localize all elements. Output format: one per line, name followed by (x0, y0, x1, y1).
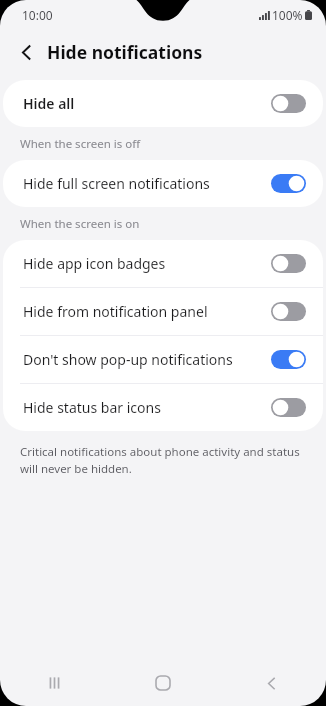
button[interactable]: Hide status bar icons (3, 384, 323, 431)
button[interactable]: Off (271, 254, 306, 273)
button[interactable]: Hide all (3, 80, 323, 127)
button[interactable]: Off (271, 398, 306, 417)
button[interactable]: On (271, 174, 306, 193)
button[interactable]: Hide app icon badges (3, 240, 323, 287)
button[interactable]: Recents (0, 660, 108, 706)
button[interactable]: Off (271, 302, 306, 321)
staticText: Critical notifications about phone activ… (20, 444, 300, 477)
staticText: Don't show pop-up notifications (23, 350, 233, 369)
staticText: When the screen is on (20, 216, 140, 232)
staticText: Hide from notification panel (23, 302, 208, 321)
button[interactable]: Off (271, 94, 306, 113)
button[interactable]: Hide from notification panel (3, 288, 323, 335)
staticText: Hide status bar icons (23, 398, 161, 417)
button[interactable]: Home (108, 660, 217, 706)
button[interactable]: Back (9, 35, 43, 69)
button[interactable]: Don't show pop-up notifications (3, 336, 323, 383)
staticText: Hide all (23, 94, 75, 113)
staticText: Hide full screen notifications (23, 174, 210, 193)
staticText: Hide notifications (47, 40, 203, 64)
button[interactable]: Back (217, 660, 326, 706)
button[interactable]: On (271, 350, 306, 369)
button[interactable]: Hide full screen notifications (3, 160, 323, 207)
staticText: 10:00 (22, 7, 53, 23)
staticText: Hide app icon badges (23, 254, 166, 273)
staticText: When the screen is off (20, 136, 141, 152)
staticText: 100% (272, 7, 303, 23)
